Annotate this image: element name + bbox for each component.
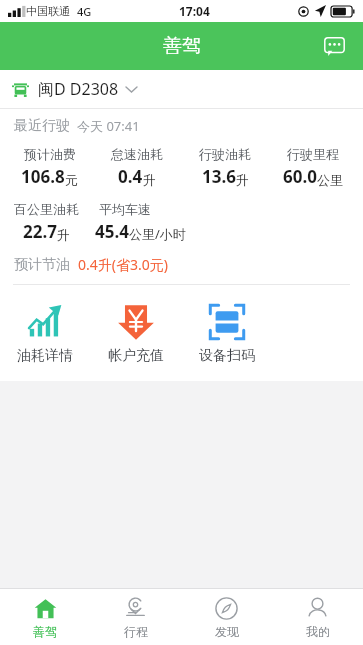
button[interactable]: 我的 [272, 589, 363, 645]
button[interactable]: 设备扫码 [181, 299, 272, 367]
button[interactable]: Messages [317, 29, 351, 63]
button[interactable]: 行程 [90, 589, 181, 645]
staticText: 闽D D2308 [38, 78, 119, 100]
staticText: 45.4 [95, 220, 129, 243]
staticText: 行驶油耗 [199, 146, 251, 162]
staticText: 今天 07:41 [77, 117, 140, 135]
staticText: 升 [236, 172, 249, 188]
staticText: 公里 [317, 172, 343, 188]
staticText: 最近行驶 [14, 117, 70, 135]
staticText: 60.0 [283, 165, 317, 188]
staticText: 升 [143, 172, 156, 188]
staticText: 油耗详情 [17, 347, 73, 365]
button[interactable]: 油耗详情 [0, 299, 90, 367]
staticText: 22.7 [23, 220, 57, 243]
staticText: 平均车速 [99, 201, 151, 217]
staticText: 帐户充值 [108, 347, 164, 365]
staticText: 升 [57, 227, 70, 243]
button[interactable]: 帐户充值 [90, 299, 181, 367]
staticText: 发现 [215, 624, 239, 639]
button[interactable]: 闽D D2308 [0, 70, 363, 108]
staticText: 善驾 [163, 34, 201, 58]
button[interactable]: 发现 [181, 589, 272, 645]
staticText: 中国联通 [26, 4, 70, 18]
staticText: 13.6 [202, 165, 236, 188]
staticText: 善驾 [33, 624, 57, 639]
staticText: 预计节油 [14, 256, 70, 274]
staticText: 行驶里程 [287, 146, 339, 162]
staticText: 17:04 [179, 3, 210, 19]
staticText: 元 [65, 172, 78, 188]
staticText: 设备扫码 [199, 347, 255, 365]
staticText: 公里/小时 [129, 225, 186, 243]
staticText: 预计油费 [24, 146, 76, 162]
staticText: 怠速油耗 [111, 146, 163, 162]
staticText: 我的 [306, 624, 330, 639]
staticText: 4G [77, 4, 92, 19]
staticText: 百公里油耗 [14, 201, 79, 217]
staticText: 106.8 [21, 165, 65, 188]
staticText: 行程 [124, 624, 148, 639]
staticText: 0.4升(省3.0元) [78, 255, 168, 274]
staticText: 0.4 [118, 165, 143, 188]
button[interactable]: 善驾 [0, 589, 90, 645]
